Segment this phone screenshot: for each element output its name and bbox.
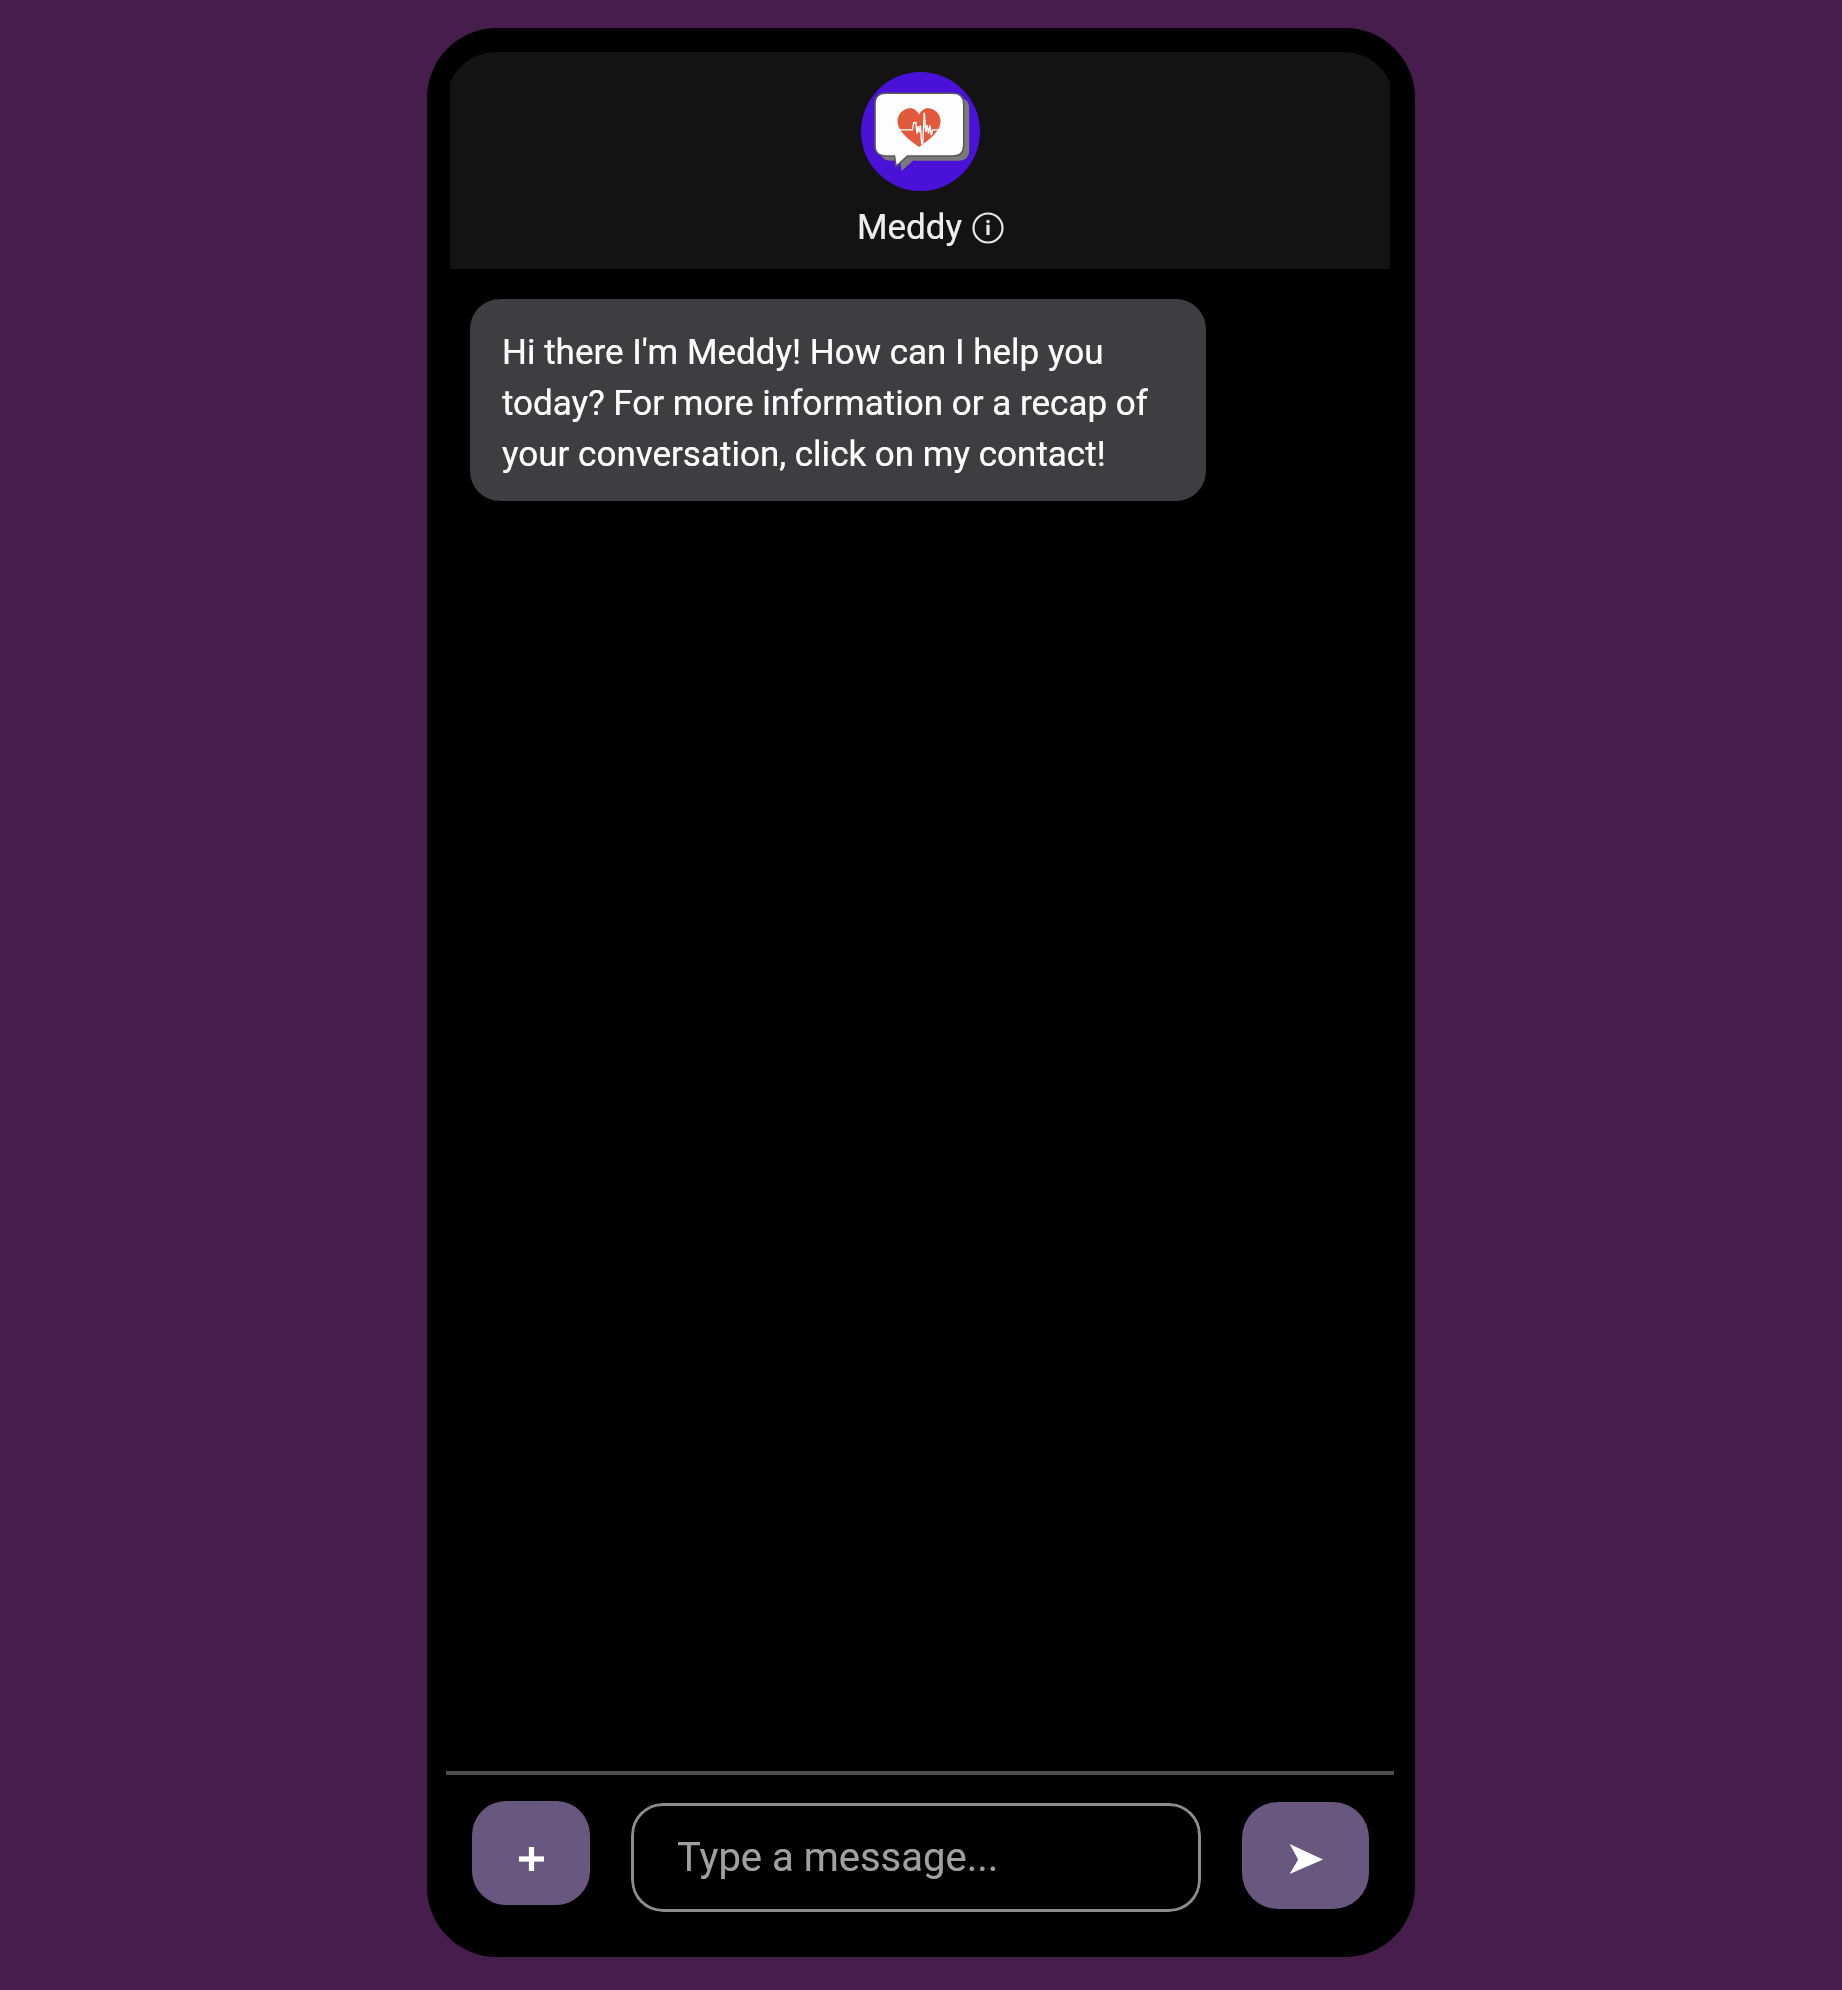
button[interactable]: Meddy avatar [861,72,980,191]
button[interactable]: Hi there I'm Meddy! How can I help you t… [470,299,1206,501]
button[interactable]: Send [1242,1802,1369,1909]
button[interactable]: Add attachment [472,1801,590,1905]
staticText: Meddy [857,207,963,248]
staticText: Hi there I'm Meddy! How can I help you t… [502,332,1174,475]
button[interactable]: Type a message... [631,1803,1201,1912]
staticText: Type a message... [677,1834,999,1881]
button[interactable]: Info [972,212,1004,244]
